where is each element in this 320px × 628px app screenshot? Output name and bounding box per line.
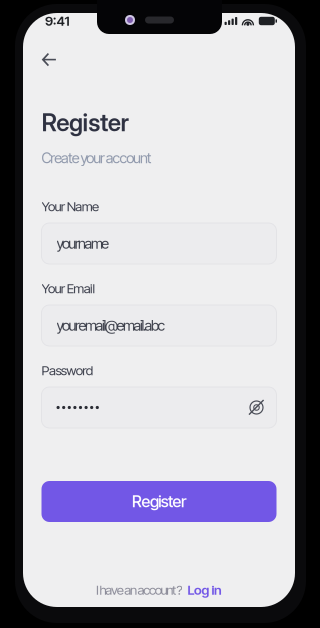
button[interactable]: Register [41, 481, 276, 522]
button[interactable]: Back [41, 47, 71, 73]
staticText: Register [41, 108, 129, 137]
staticText: yourname [56, 235, 109, 252]
staticText: Your Email [41, 280, 96, 296]
staticText: Register [132, 492, 186, 511]
button[interactable]: Show password [248, 399, 264, 415]
staticText: I have an account ? [96, 582, 182, 598]
button[interactable]: I have an account ? [96, 583, 222, 597]
staticText: youremail@email.abc [56, 317, 165, 334]
staticText: Your Name [41, 198, 99, 214]
staticText: 9:41 [45, 13, 69, 29]
staticText: Password [41, 362, 93, 378]
staticText: Log in [187, 582, 222, 598]
staticText: Create your account [41, 149, 152, 167]
